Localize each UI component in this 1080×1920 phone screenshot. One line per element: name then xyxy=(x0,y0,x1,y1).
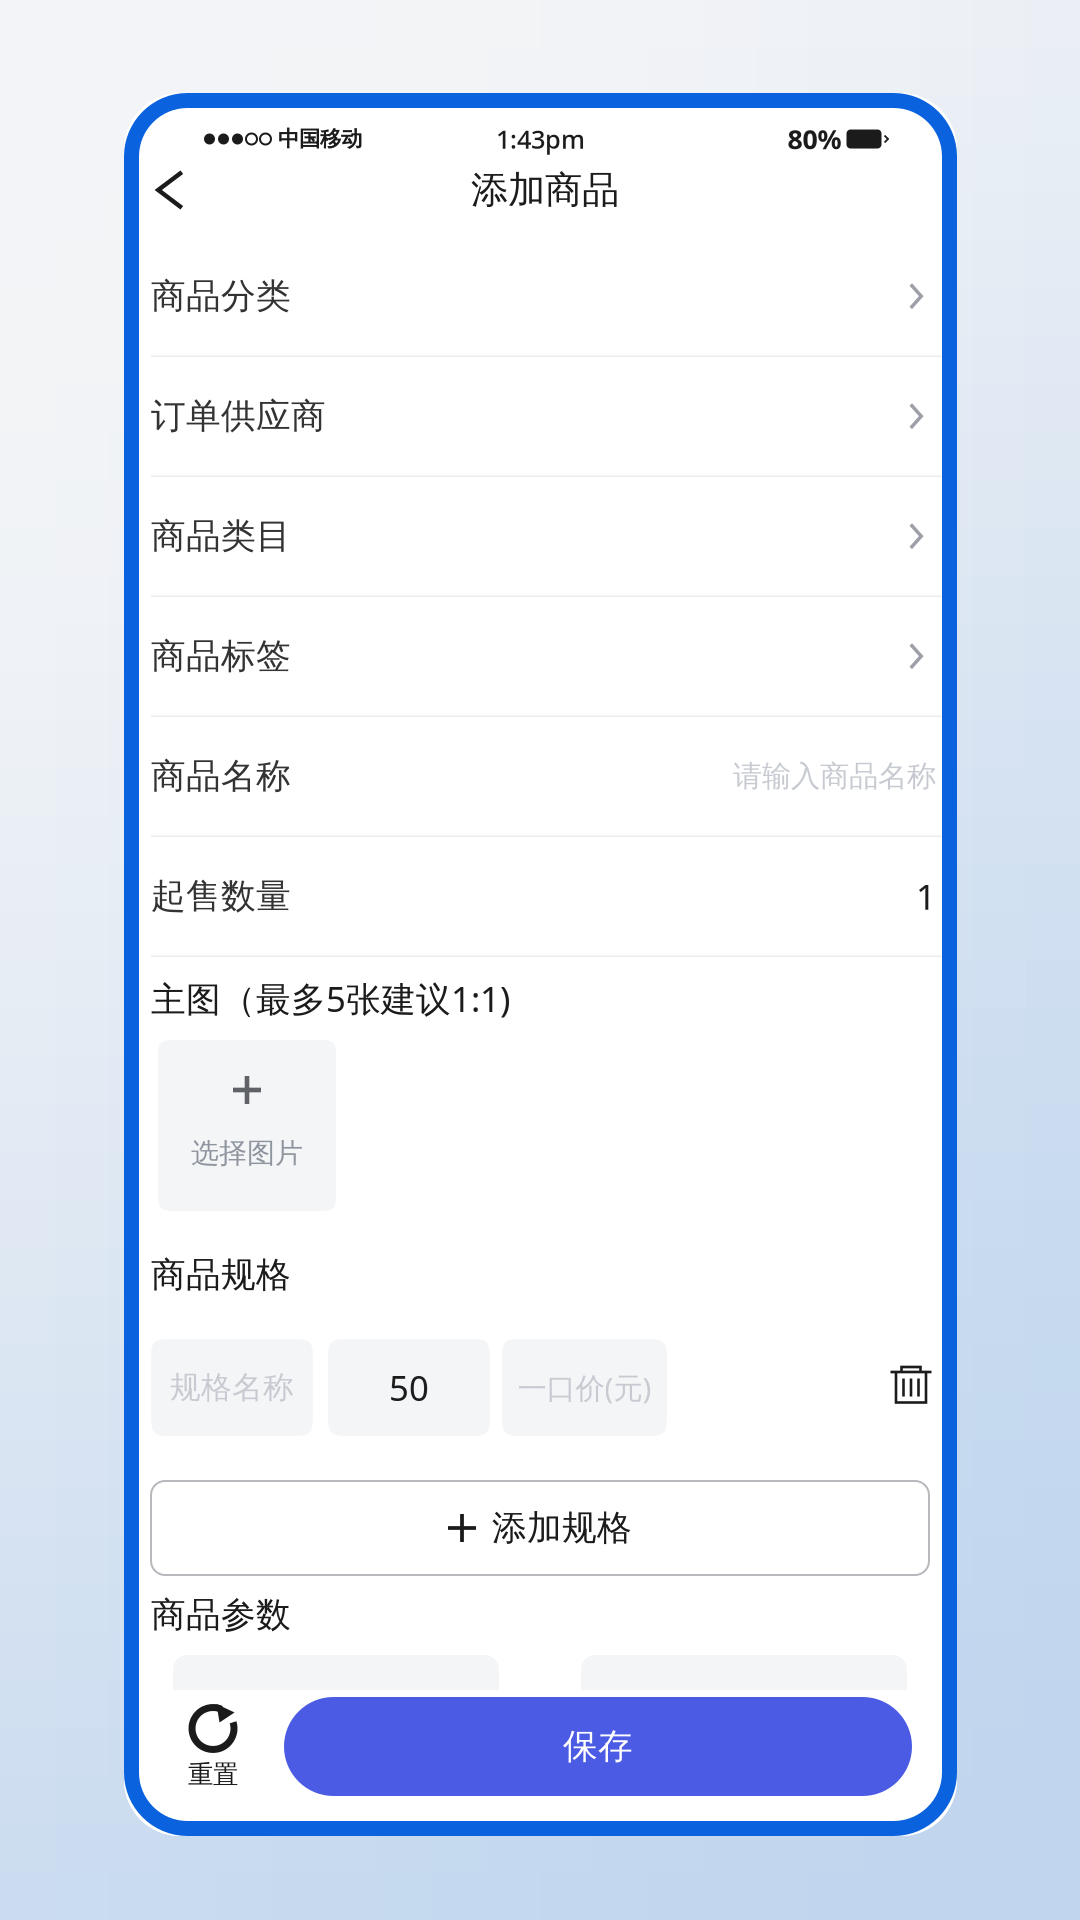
button[interactable]: 订单供应商 xyxy=(124,357,957,477)
staticText: 重置 xyxy=(188,1759,238,1790)
staticText: 添加规格 xyxy=(492,1507,632,1549)
staticText: 商品规格 xyxy=(151,1254,291,1296)
staticText: 规格名称 xyxy=(170,1369,294,1406)
button[interactable]: 商品标签 xyxy=(124,597,957,717)
staticText: 保存 xyxy=(563,1725,633,1768)
button[interactable]: 商品类目 xyxy=(124,477,957,597)
staticText: 商品类目 xyxy=(151,515,291,557)
staticText: 商品名称 xyxy=(151,755,291,797)
staticText: 请输入商品名称 xyxy=(733,758,936,794)
staticText: 起售数量 xyxy=(151,875,291,917)
staticText: 1 xyxy=(916,873,936,919)
staticText: 商品参数 xyxy=(151,1594,291,1636)
staticText: 一口价(元) xyxy=(517,1368,651,1407)
button[interactable]: 重置 xyxy=(182,1697,244,1814)
button[interactable]: 选择图片 xyxy=(158,1040,336,1211)
staticText: 中国移动 xyxy=(278,126,362,152)
staticText: 添加商品 xyxy=(471,167,619,213)
button[interactable]: 添加规格 xyxy=(151,1481,929,1575)
staticText: 商品标签 xyxy=(151,635,291,677)
staticText: 50 xyxy=(389,1364,429,1410)
staticText: 商品分类 xyxy=(151,275,291,317)
staticText: 80% xyxy=(787,121,841,157)
staticText: 订单供应商 xyxy=(151,395,326,437)
button[interactable]: 删除规格 xyxy=(890,1365,932,1409)
button[interactable]: 商品分类 xyxy=(124,237,957,357)
staticText: 1:43pm xyxy=(496,122,585,156)
button[interactable]: 保存 xyxy=(284,1697,912,1796)
staticText: 主图（最多5张建议1:1) xyxy=(151,975,510,1021)
button[interactable]: 返回 xyxy=(133,155,207,225)
staticText: 选择图片 xyxy=(191,1136,303,1170)
